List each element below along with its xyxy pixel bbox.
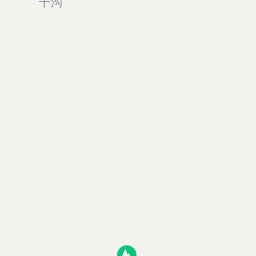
button[interactable]: Compose: [117, 245, 136, 256]
staticText: 干沟: [38, 0, 62, 10]
